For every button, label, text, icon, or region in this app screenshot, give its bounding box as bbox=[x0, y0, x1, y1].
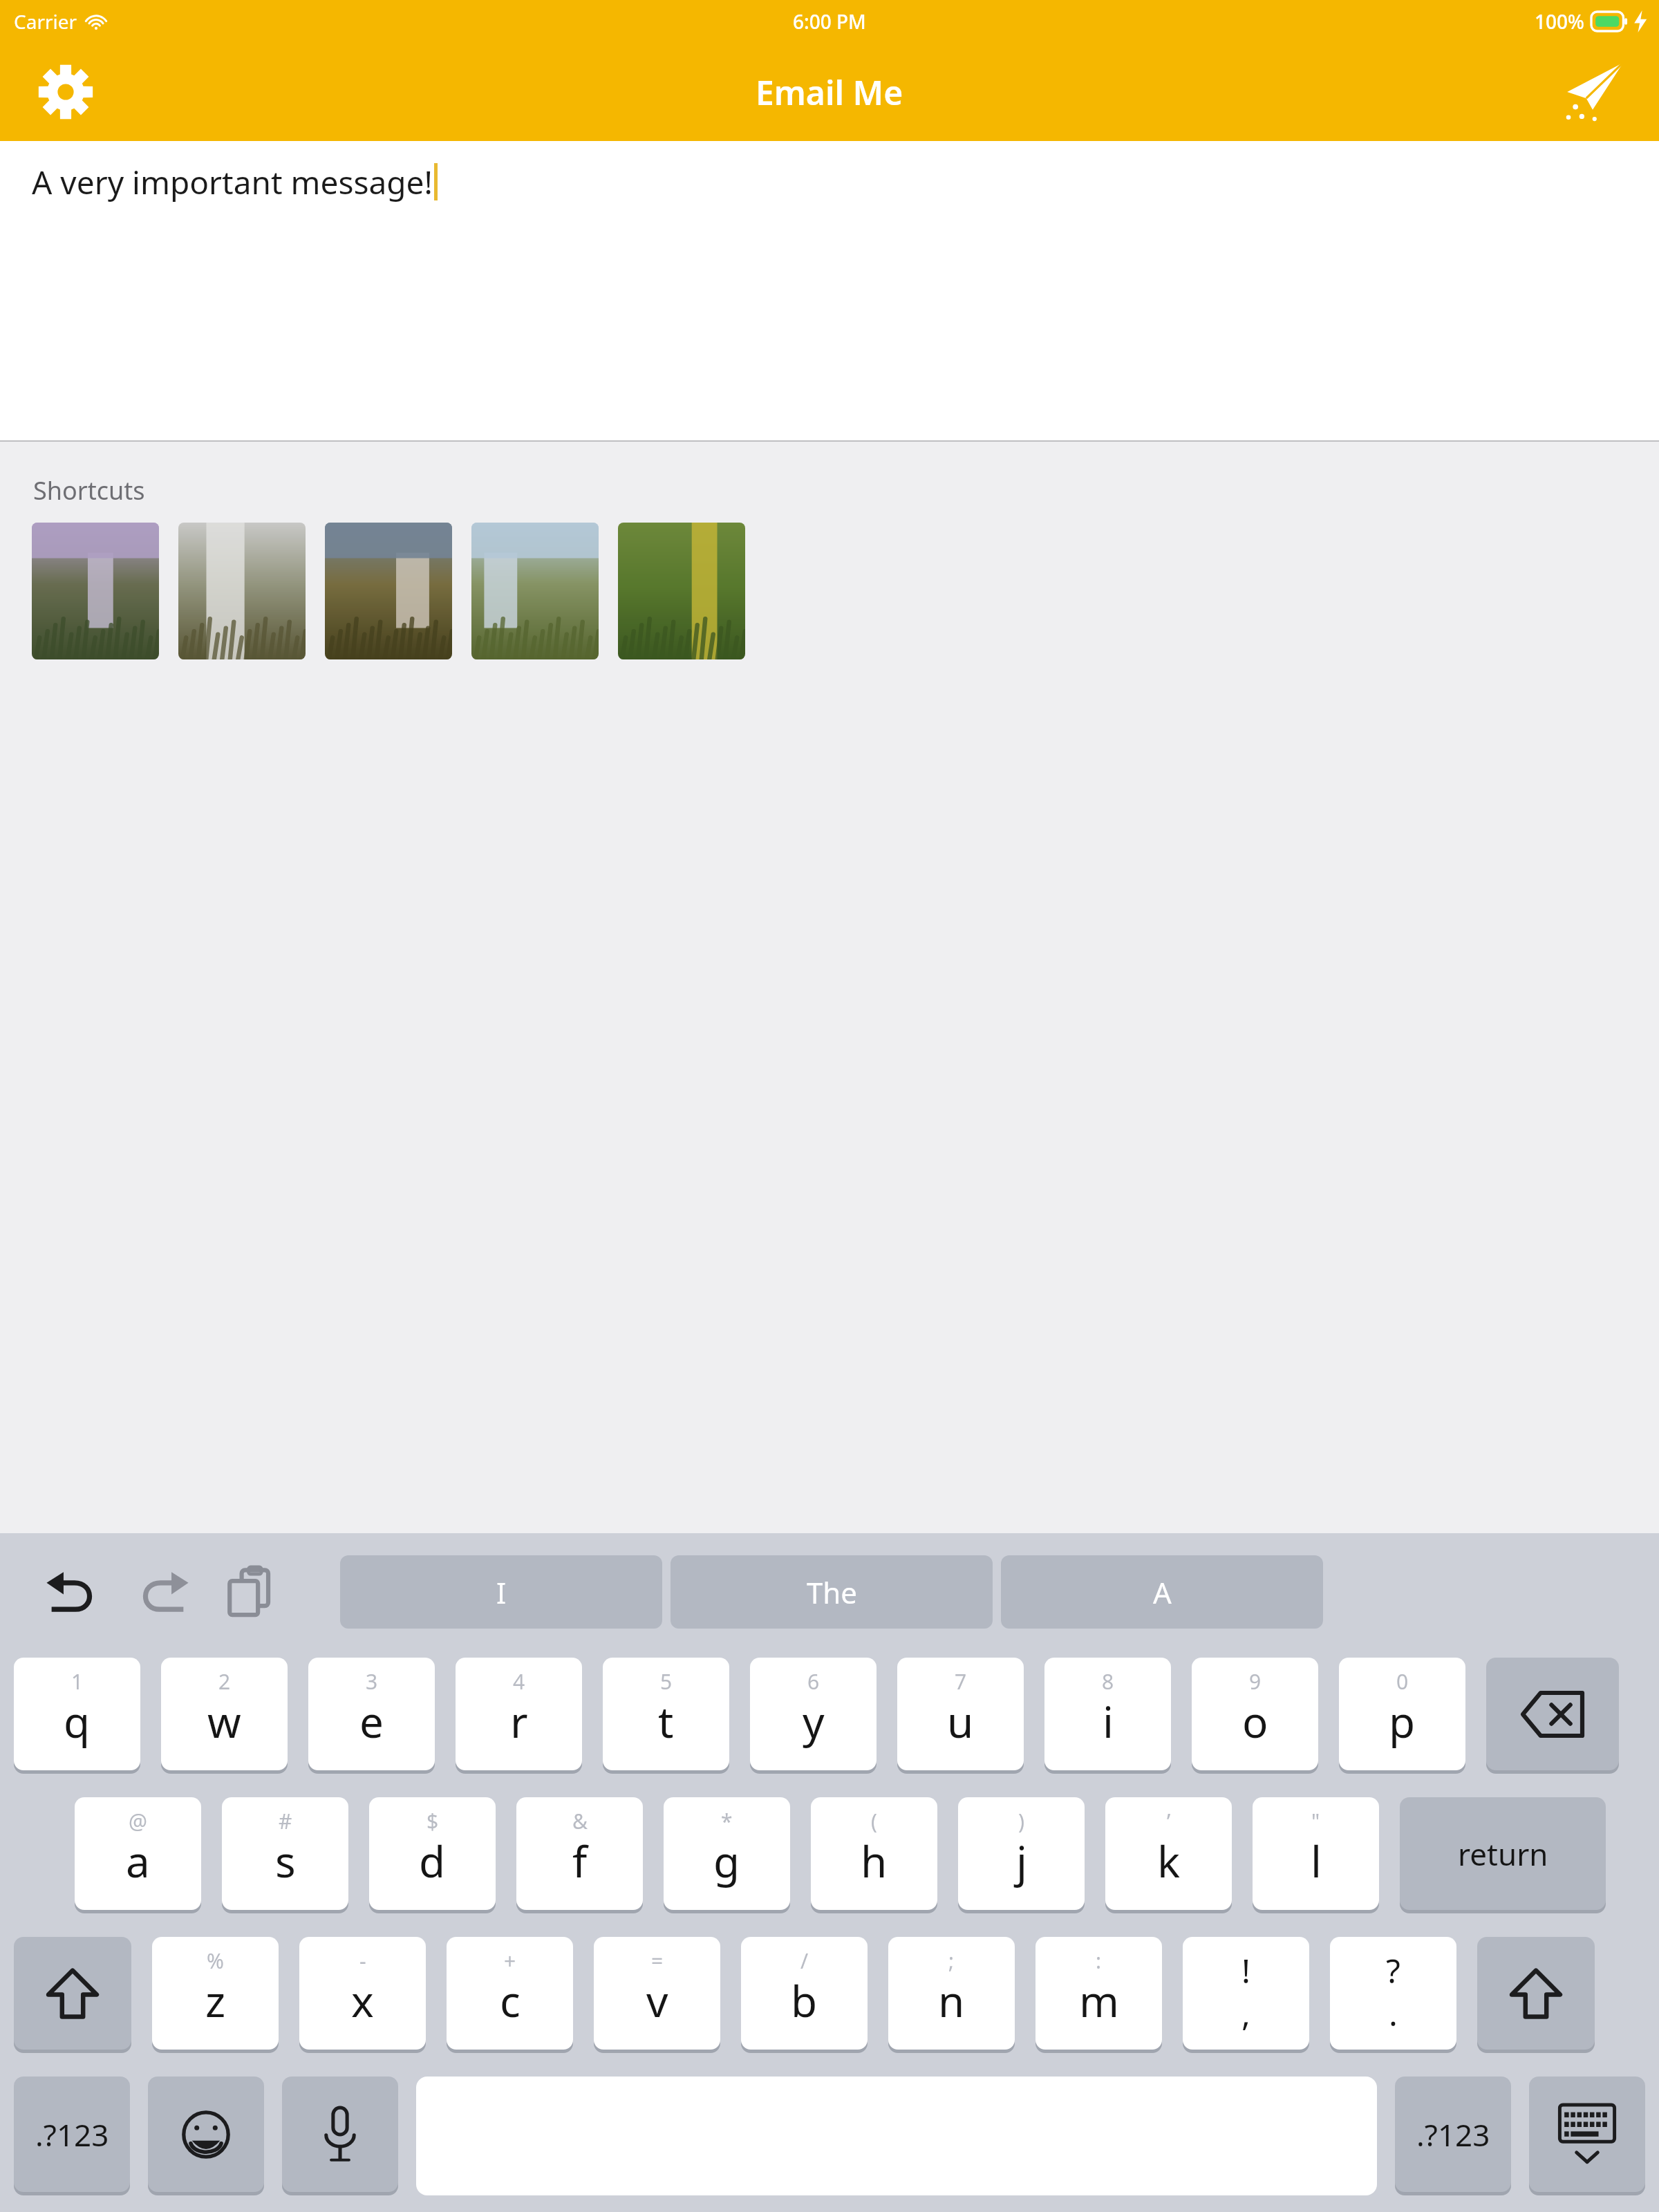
button[interactable]: 4 bbox=[456, 1658, 582, 1774]
button[interactable]: return bbox=[1400, 1797, 1606, 1913]
staticText: ) bbox=[1018, 1807, 1024, 1835]
button[interactable]: .?123 bbox=[1395, 2077, 1511, 2195]
staticText: g bbox=[713, 1832, 740, 1890]
staticText: y bbox=[803, 1692, 825, 1750]
button[interactable]: Shortcut 3 bbox=[325, 523, 452, 659]
button[interactable]: / bbox=[741, 1937, 868, 2053]
staticText: j bbox=[1016, 1832, 1027, 1890]
staticText: ! bbox=[1241, 1948, 1250, 1993]
staticText: a bbox=[126, 1832, 150, 1890]
button[interactable]: ? bbox=[1330, 1937, 1456, 2053]
button[interactable]: + bbox=[447, 1937, 573, 2053]
staticText: .?123 bbox=[1416, 2114, 1490, 2155]
button[interactable]: " bbox=[1253, 1797, 1379, 1913]
button[interactable]: .?123 bbox=[14, 2077, 130, 2195]
button[interactable]: ( bbox=[811, 1797, 937, 1913]
staticText: * bbox=[721, 1807, 733, 1835]
staticText: 2 bbox=[218, 1667, 231, 1696]
staticText: z bbox=[205, 1971, 226, 2030]
button[interactable]: 9 bbox=[1192, 1658, 1318, 1774]
staticText: 0 bbox=[1396, 1667, 1409, 1696]
button[interactable]: Send bbox=[1551, 50, 1634, 133]
staticText: 100% bbox=[1535, 8, 1584, 35]
button[interactable]: & bbox=[516, 1797, 643, 1913]
staticText: s bbox=[275, 1832, 296, 1890]
button[interactable]: - bbox=[299, 1937, 426, 2053]
button[interactable]: 6 bbox=[750, 1658, 877, 1774]
staticText: p bbox=[1389, 1692, 1416, 1750]
staticText: l bbox=[1311, 1832, 1322, 1890]
staticText: u bbox=[947, 1692, 974, 1750]
staticText: r bbox=[510, 1692, 528, 1750]
button[interactable]: 2 bbox=[161, 1658, 288, 1774]
button[interactable]: I bbox=[340, 1555, 662, 1629]
staticText: " bbox=[1311, 1807, 1320, 1835]
button[interactable]: The bbox=[671, 1555, 993, 1629]
button[interactable]: Hide keyboard bbox=[1529, 2077, 1645, 2195]
button[interactable]: = bbox=[594, 1937, 720, 2053]
button[interactable]: Shortcut 5 bbox=[618, 523, 745, 659]
staticText: The bbox=[807, 1573, 857, 1612]
staticText: & bbox=[572, 1807, 588, 1835]
staticText: $ bbox=[427, 1807, 439, 1835]
staticText: I bbox=[496, 1573, 507, 1612]
button[interactable]: Shift bbox=[14, 1937, 131, 2053]
staticText: Email Me bbox=[756, 70, 903, 115]
staticText: h bbox=[861, 1832, 888, 1890]
button[interactable]: * bbox=[664, 1797, 790, 1913]
button[interactable]: Shortcut 2 bbox=[178, 523, 306, 659]
button[interactable]: Redo bbox=[133, 1560, 196, 1624]
button[interactable]: % bbox=[152, 1937, 279, 2053]
staticText: 4 bbox=[513, 1667, 525, 1696]
button[interactable]: : bbox=[1035, 1937, 1162, 2053]
button[interactable]: Dictation bbox=[282, 2077, 398, 2195]
button[interactable]: 5 bbox=[603, 1658, 729, 1774]
button[interactable]: ) bbox=[958, 1797, 1085, 1913]
button[interactable]: ! bbox=[1183, 1937, 1309, 2053]
button[interactable]: ’ bbox=[1105, 1797, 1232, 1913]
staticText: 8 bbox=[1102, 1667, 1114, 1696]
staticText: 3 bbox=[366, 1667, 378, 1696]
button[interactable]: Shortcut 1 bbox=[32, 523, 159, 659]
button[interactable]: Undo bbox=[39, 1560, 102, 1624]
staticText: m bbox=[1079, 1971, 1119, 2030]
staticText: A bbox=[1153, 1573, 1172, 1612]
staticText: 5 bbox=[660, 1667, 673, 1696]
staticText: q bbox=[64, 1692, 91, 1750]
staticText: c bbox=[500, 1971, 521, 2030]
button[interactable]: Backspace bbox=[1486, 1658, 1619, 1774]
button[interactable]: ; bbox=[888, 1937, 1015, 2053]
button[interactable]: A very important message! bbox=[0, 141, 1659, 440]
staticText: w bbox=[207, 1692, 241, 1750]
staticText: ; bbox=[948, 1947, 955, 1975]
button[interactable]: 0 bbox=[1339, 1658, 1465, 1774]
staticText: 9 bbox=[1249, 1667, 1262, 1696]
staticText: ( bbox=[871, 1807, 877, 1835]
button[interactable]: # bbox=[222, 1797, 348, 1913]
button[interactable]: 3 bbox=[308, 1658, 435, 1774]
button[interactable]: @ bbox=[75, 1797, 201, 1913]
button[interactable]: Shortcut 4 bbox=[471, 523, 599, 659]
staticText: 7 bbox=[955, 1667, 967, 1696]
button[interactable]: Emoji bbox=[148, 2077, 264, 2195]
staticText: o bbox=[1242, 1692, 1268, 1750]
button[interactable]: Shift bbox=[1477, 1937, 1595, 2053]
button[interactable]: 8 bbox=[1044, 1658, 1171, 1774]
button[interactable]: Paste bbox=[218, 1560, 282, 1624]
staticText: ’ bbox=[1167, 1807, 1171, 1835]
staticText: f bbox=[572, 1832, 588, 1890]
staticText: 6:00 PM bbox=[793, 8, 866, 35]
staticText: ? bbox=[1386, 1948, 1400, 1993]
staticText: .?123 bbox=[35, 2114, 109, 2155]
button[interactable]: A bbox=[1001, 1555, 1323, 1629]
staticText: # bbox=[279, 1807, 292, 1835]
button[interactable]: 7 bbox=[897, 1658, 1024, 1774]
button[interactable]: 1 bbox=[14, 1658, 140, 1774]
staticText: n bbox=[938, 1971, 965, 2030]
staticText: Shortcuts bbox=[33, 474, 145, 507]
staticText: / bbox=[800, 1947, 809, 1975]
staticText: return bbox=[1458, 1833, 1548, 1875]
button[interactable]: Settings bbox=[28, 54, 104, 130]
button[interactable]: $ bbox=[369, 1797, 496, 1913]
